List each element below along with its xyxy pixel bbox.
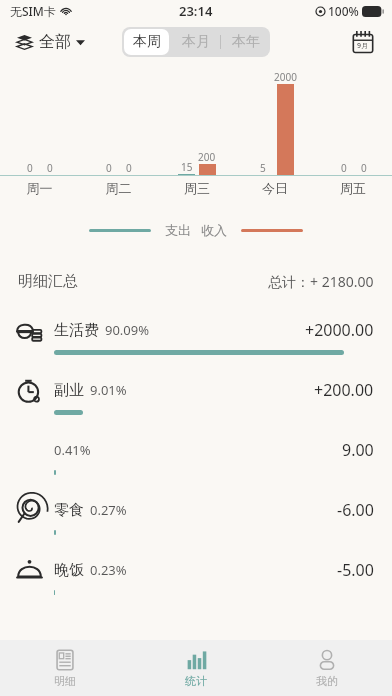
staticText: 9.01%	[90, 381, 127, 399]
staticText: 生活费	[54, 321, 99, 340]
staticText: +2000.00	[305, 319, 374, 341]
staticText: 总计：+ 2180.00	[268, 272, 374, 291]
button[interactable]: 本月	[171, 27, 220, 57]
staticText: -5.00	[337, 559, 374, 581]
staticText: 0	[361, 161, 367, 175]
staticText: 收入	[201, 222, 227, 238]
staticText: 0	[27, 161, 33, 175]
staticText: 周一	[0, 180, 79, 196]
button[interactable]: 选择月份	[346, 25, 380, 59]
staticText: 全部	[39, 32, 71, 52]
button[interactable]: 晚饭	[0, 545, 392, 605]
staticText: 本周	[133, 33, 161, 51]
button[interactable]: 我的	[261, 640, 392, 696]
staticText: 100%	[328, 3, 359, 19]
staticText: 0.23%	[90, 561, 127, 579]
staticText: 0	[47, 161, 53, 175]
button[interactable]: 统计	[130, 640, 261, 696]
staticText: 23:14	[179, 2, 213, 20]
staticText: 9月	[357, 41, 369, 51]
staticText: 明细汇总	[18, 272, 78, 291]
staticText: 5	[260, 161, 266, 175]
staticText: 0	[341, 161, 347, 175]
staticText: 周三	[158, 180, 236, 196]
staticText: 周五	[314, 180, 392, 196]
button[interactable]: 明细	[0, 640, 130, 696]
staticText: 本年	[232, 33, 260, 51]
staticText: 晚饭	[54, 561, 84, 580]
staticText: 200	[198, 150, 216, 164]
button[interactable]: 副业	[0, 365, 392, 425]
button[interactable]: 生活费	[0, 305, 392, 365]
staticText: 2000	[274, 70, 297, 84]
staticText: 副业	[54, 381, 84, 400]
staticText: 0	[106, 161, 112, 175]
button[interactable]: 本周	[124, 29, 169, 55]
staticText: 周二	[79, 180, 158, 196]
staticText: -6.00	[337, 499, 374, 521]
staticText: 9.00	[342, 439, 374, 461]
staticText: 0.41%	[54, 441, 91, 459]
button[interactable]: 0.41%	[0, 425, 392, 485]
staticText: 统计	[185, 674, 207, 688]
staticText: 零食	[54, 501, 84, 520]
button[interactable]: 本年	[221, 27, 270, 57]
staticText: 0	[126, 161, 132, 175]
staticText: 无SIM卡	[10, 3, 56, 19]
staticText: 支出	[165, 222, 191, 238]
staticText: 我的	[316, 674, 338, 688]
staticText: 明细	[54, 674, 76, 688]
staticText: 90.09%	[105, 321, 150, 339]
staticText: +200.00	[314, 379, 374, 401]
button[interactable]: 全部	[12, 28, 89, 56]
staticText: 今日	[236, 180, 314, 196]
staticText: 0.27%	[90, 501, 127, 519]
button[interactable]: 零食	[0, 485, 392, 545]
staticText: 15	[181, 160, 193, 174]
staticText: 本月	[182, 33, 210, 51]
